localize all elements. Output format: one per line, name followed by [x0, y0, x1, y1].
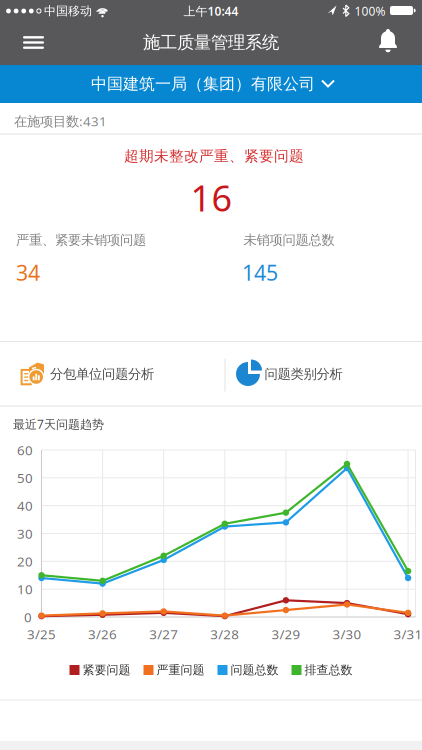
button[interactable] — [366, 21, 410, 61]
staticText: 严重、紧要未销项问题 — [16, 232, 146, 248]
staticText: 在施项目数:431 — [14, 112, 107, 130]
button[interactable] — [11, 20, 55, 65]
button[interactable]: 中国建筑一局（集团）有限公司 — [0, 65, 422, 103]
staticText: 20 — [17, 552, 33, 570]
staticText: 3/28 — [210, 625, 239, 643]
staticText: 3/26 — [88, 625, 117, 643]
staticText: 100% — [354, 3, 385, 19]
staticText: 问题类别分析 — [264, 366, 342, 382]
staticText: 问题总数 — [230, 663, 278, 677]
staticText: 紧要问题 — [82, 663, 130, 677]
staticText: 未销项问题总数 — [243, 232, 334, 248]
staticText: 60 — [17, 441, 33, 459]
button[interactable]: 问题类别分析 — [225, 342, 422, 405]
staticText: 最近7天问题趋势 — [13, 416, 104, 432]
staticText: 施工质量管理系统 — [143, 32, 279, 53]
staticText: 上午10:44 — [183, 3, 238, 19]
staticText: 34 — [16, 258, 40, 287]
staticText: 30 — [17, 525, 33, 542]
staticText: 40 — [17, 497, 33, 514]
staticText: 3/30 — [332, 625, 361, 643]
staticText: 10 — [17, 580, 33, 598]
staticText: 16 — [190, 174, 232, 221]
button[interactable]: 分包单位问题分析 — [0, 342, 225, 405]
staticText: 3/29 — [271, 625, 300, 643]
staticText: 3/27 — [149, 625, 178, 643]
staticText: 145 — [242, 258, 278, 287]
staticText: 排查总数 — [304, 663, 352, 677]
staticText: 0 — [24, 608, 32, 626]
staticText: 超期未整改严重、紧要问题 — [124, 147, 304, 165]
staticText: 3/25 — [27, 625, 56, 643]
staticText: 分包单位问题分析 — [50, 366, 154, 382]
staticText: 中国建筑一局（集团）有限公司 — [91, 74, 315, 94]
staticText: 3/31 — [394, 625, 422, 643]
staticText: 50 — [17, 469, 33, 487]
staticText: 中国移动 — [44, 4, 92, 18]
staticText: 严重问题 — [156, 663, 204, 677]
